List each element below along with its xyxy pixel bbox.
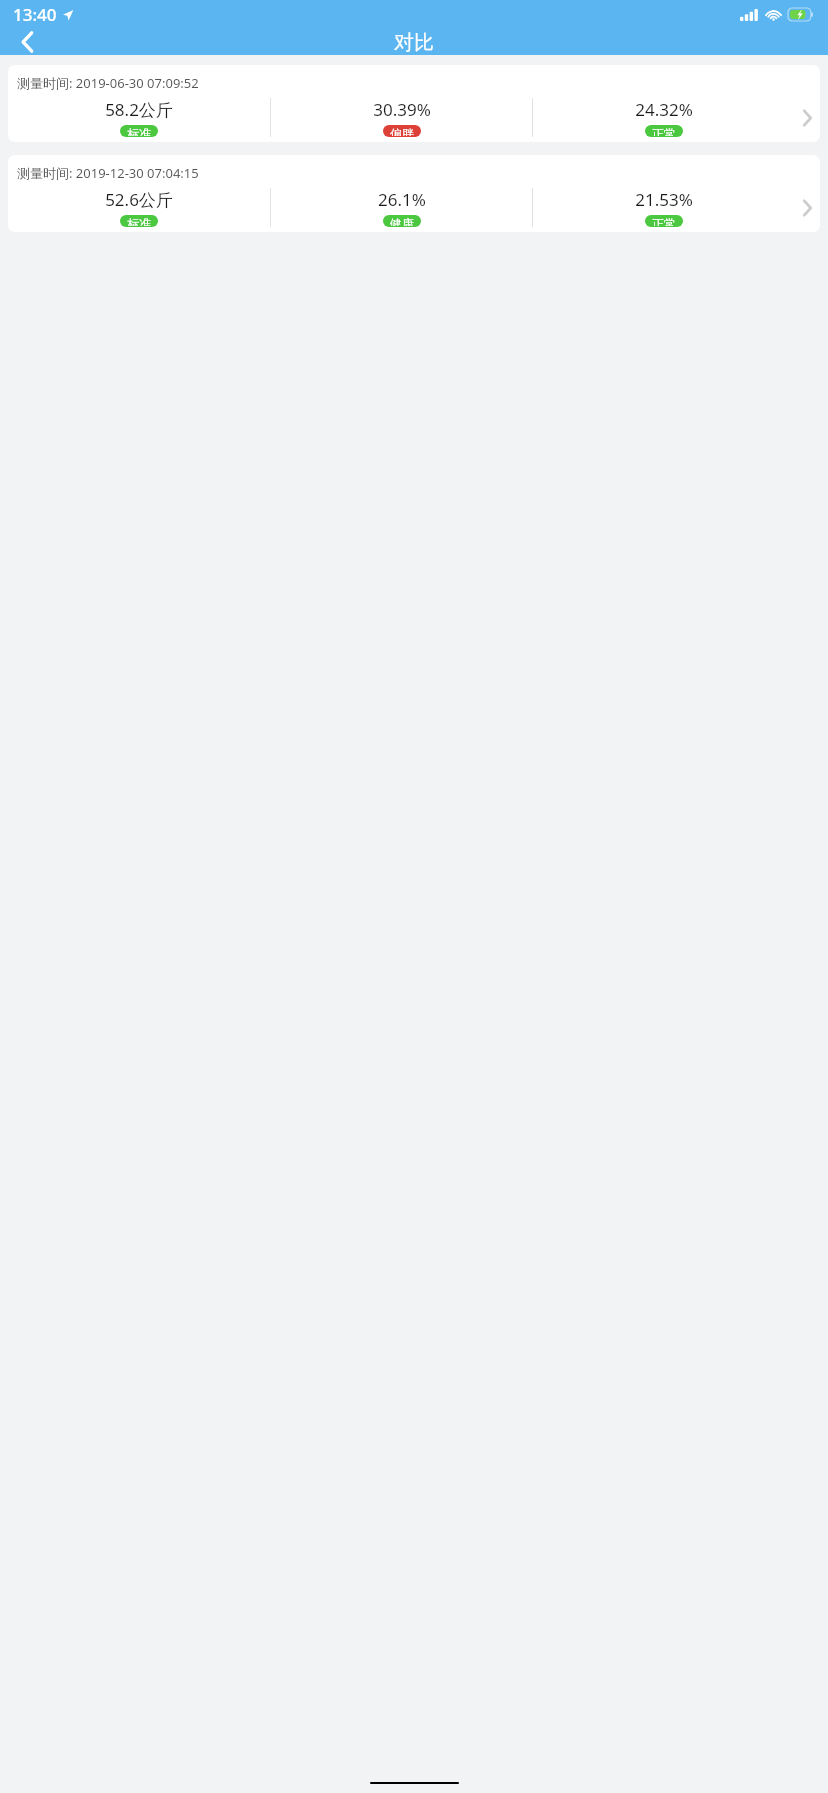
staticText: 13:40 [13,3,57,26]
staticText: 24.32% [635,98,693,121]
staticText: 测量时间: 2019-06-30 07:09:52 [17,74,199,92]
staticText: 正常 [652,126,676,136]
staticText: 26.1% [378,188,426,211]
staticText: 对比 [394,30,434,55]
staticText: 标准 [127,216,151,226]
button[interactable]: Back [6,29,48,55]
staticText: 30.39% [373,98,431,121]
button[interactable]: 测量时间: 2019-06-30 07:09:52 [8,65,820,142]
staticText: 偏胖 [390,126,414,136]
staticText: 标准 [127,126,151,136]
staticText: 测量时间: 2019-12-30 07:04:15 [17,164,199,182]
staticText: 健康 [390,216,414,226]
staticText: 58.2公斤 [105,98,173,121]
staticText: 正常 [652,216,676,226]
button[interactable]: 测量时间: 2019-12-30 07:04:15 [8,155,820,232]
staticText: 21.53% [635,188,693,211]
staticText: 52.6公斤 [105,188,173,211]
